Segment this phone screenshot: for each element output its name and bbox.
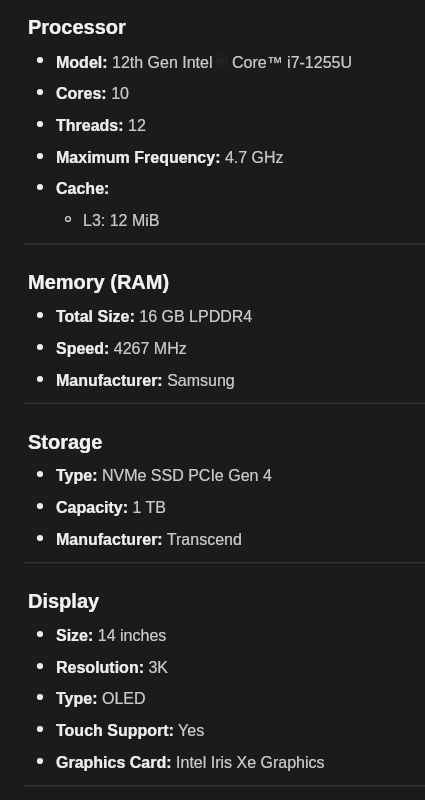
button[interactable]: Manufacturer: Transcend xyxy=(0,523,425,555)
button[interactable]: Maximum Frequency: 4.7 GHz xyxy=(0,141,425,173)
staticText: Type: NVMe SSD PCIe Gen 4 xyxy=(56,467,272,485)
button[interactable]: Threads: 12 xyxy=(0,109,425,141)
button[interactable]: Manufacturer: Samsung xyxy=(0,364,425,396)
staticText: Type: OLED xyxy=(56,690,146,708)
staticText: Manufacturer: Transcend xyxy=(56,531,242,549)
button[interactable]: Cache: xyxy=(0,172,425,204)
staticText: Model: 12th Gen Intel ® Core™ i7-1255U xyxy=(56,53,352,72)
button[interactable]: Graphics Card: Intel Iris Xe Graphics xyxy=(0,746,425,778)
button[interactable]: Speed: 4267 MHz xyxy=(0,332,425,364)
button[interactable]: Capacity: 1 TB xyxy=(0,491,425,523)
button[interactable]: Total Size: 16 GB LPDDR4 xyxy=(0,300,425,332)
staticText: Processor xyxy=(28,16,126,38)
staticText: Cores: 10 xyxy=(56,85,129,103)
staticText: Cache: xyxy=(56,180,110,198)
staticText: Threads: 12 xyxy=(56,117,146,135)
button[interactable]: Memory (RAM) xyxy=(0,271,425,295)
button[interactable]: Processor xyxy=(0,16,425,40)
button[interactable]: Model: 12th Gen Intel ® Core™ i7-1255U xyxy=(0,45,425,77)
button[interactable]: Type: OLED xyxy=(0,682,425,714)
staticText: Total Size: 16 GB LPDDR4 xyxy=(56,308,253,326)
staticText: Manufacturer: Samsung xyxy=(56,372,235,390)
staticText: Resolution: 3K xyxy=(56,659,169,677)
button[interactable]: Display xyxy=(0,590,425,614)
staticText: Display xyxy=(28,590,100,612)
staticText: Storage xyxy=(28,431,103,453)
button[interactable]: L3: 12 MiB xyxy=(0,204,425,236)
staticText: Graphics Card: Intel Iris Xe Graphics xyxy=(56,754,325,772)
button[interactable]: Storage xyxy=(0,431,425,455)
button[interactable]: Touch Support: Yes xyxy=(0,714,425,746)
button[interactable]: Resolution: 3K xyxy=(0,651,425,683)
button[interactable]: Cores: 10 xyxy=(0,77,425,109)
staticText: Maximum Frequency: 4.7 GHz xyxy=(56,149,284,167)
staticText: Memory (RAM) xyxy=(28,271,170,293)
button[interactable]: Type: NVMe SSD PCIe Gen 4 xyxy=(0,459,425,491)
staticText: Capacity: 1 TB xyxy=(56,499,166,517)
staticText: L3: 12 MiB xyxy=(83,212,160,230)
staticText: Speed: 4267 MHz xyxy=(56,340,187,358)
staticText: Size: 14 inches xyxy=(56,627,167,645)
button[interactable]: Size: 14 inches xyxy=(0,619,425,651)
staticText: Touch Support: Yes xyxy=(56,722,205,740)
